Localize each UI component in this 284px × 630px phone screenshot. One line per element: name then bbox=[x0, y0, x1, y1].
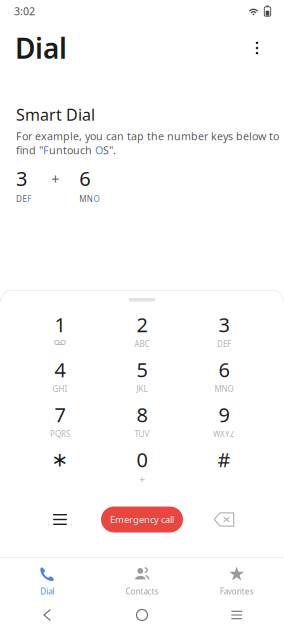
button[interactable]: 2 bbox=[101, 312, 183, 357]
staticText: M bbox=[79, 194, 86, 204]
button[interactable]: 6 bbox=[183, 357, 265, 402]
button[interactable]: 4 bbox=[19, 357, 101, 402]
staticText: 0 bbox=[136, 446, 147, 473]
button[interactable]: 5 bbox=[101, 357, 183, 402]
button[interactable]: Home bbox=[95, 600, 189, 630]
staticText: untouch bbox=[49, 143, 95, 157]
staticText: ABC bbox=[134, 338, 149, 349]
button[interactable]: 0 bbox=[101, 447, 183, 492]
staticText: 8 bbox=[136, 401, 147, 428]
button[interactable]: Favorites bbox=[189, 557, 284, 600]
button[interactable]: 8 bbox=[101, 402, 183, 447]
staticText: F bbox=[27, 194, 31, 204]
button[interactable]: 9 bbox=[183, 402, 265, 447]
button[interactable]: 7 bbox=[19, 402, 101, 447]
staticText: E bbox=[23, 194, 27, 204]
staticText: 3 bbox=[218, 311, 229, 338]
staticText: Dial bbox=[15, 29, 67, 67]
staticText: 1 bbox=[54, 311, 65, 338]
staticText: JKL bbox=[136, 383, 147, 394]
staticText: Contacts bbox=[125, 586, 158, 597]
staticText: Dial bbox=[40, 586, 54, 597]
staticText: PQRS bbox=[50, 428, 70, 439]
staticText: D bbox=[16, 194, 22, 204]
button[interactable]: Recents bbox=[189, 600, 284, 630]
staticText: 4 bbox=[54, 356, 65, 383]
staticText: find " bbox=[16, 143, 43, 157]
staticText: # bbox=[217, 446, 230, 473]
button[interactable]: 1 bbox=[19, 312, 101, 357]
staticText: + bbox=[139, 472, 145, 486]
button[interactable]: Contacts bbox=[95, 557, 189, 600]
staticText: 3 bbox=[16, 165, 27, 192]
staticText: WXYZ bbox=[213, 428, 235, 439]
staticText: 7 bbox=[54, 401, 65, 428]
staticText: Favorites bbox=[220, 586, 254, 597]
staticText: 5 bbox=[136, 356, 147, 383]
button[interactable]: Back bbox=[0, 600, 95, 630]
button[interactable]: Emergency call bbox=[101, 500, 183, 538]
staticText: GHI bbox=[52, 383, 67, 394]
staticText: ∗ bbox=[51, 448, 68, 471]
staticText: 6 bbox=[79, 165, 90, 192]
staticText: S". bbox=[103, 143, 116, 157]
staticText: O bbox=[95, 143, 103, 157]
staticText: Emergency call bbox=[110, 513, 174, 526]
staticText: TUV bbox=[134, 428, 149, 439]
staticText: Smart Dial bbox=[16, 104, 95, 125]
staticText: 3:02 bbox=[14, 4, 35, 18]
button[interactable]: # bbox=[183, 447, 265, 492]
staticText: 6 bbox=[218, 356, 229, 383]
button[interactable]: More options bbox=[239, 30, 275, 66]
staticText: 2 bbox=[136, 311, 147, 338]
staticText: MNO bbox=[214, 383, 233, 394]
button[interactable]: Menu bbox=[19, 500, 101, 538]
button[interactable]: 3 bbox=[183, 312, 265, 357]
button[interactable]: Delete bbox=[183, 500, 265, 538]
staticText: F bbox=[43, 143, 49, 157]
staticText: DEF bbox=[217, 338, 231, 349]
staticText: + bbox=[51, 169, 59, 188]
staticText: For example, you can tap the number keys… bbox=[16, 129, 279, 143]
button[interactable]: ∗ bbox=[19, 447, 101, 492]
button[interactable]: Dial bbox=[0, 557, 95, 600]
staticText: N bbox=[87, 194, 93, 204]
staticText: O bbox=[93, 194, 99, 204]
staticText: 9 bbox=[218, 401, 229, 428]
